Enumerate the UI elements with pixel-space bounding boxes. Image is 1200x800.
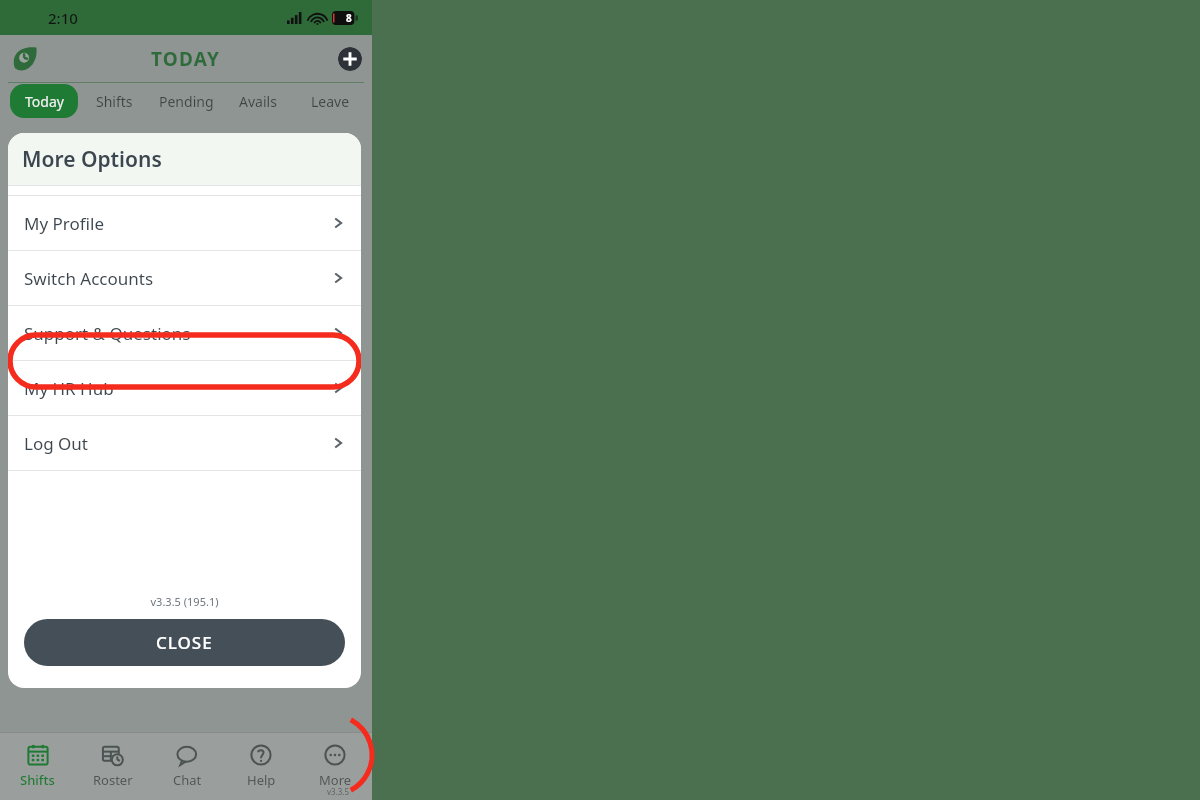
button[interactable]: More [298, 732, 372, 800]
button[interactable]: Chat [150, 732, 224, 800]
button[interactable]: Pending [150, 84, 222, 118]
staticText: My Profile [24, 212, 331, 235]
button[interactable]: Log Out [8, 416, 361, 470]
button[interactable]: Roster [75, 732, 150, 800]
staticText: Shifts [20, 771, 55, 789]
staticText: Support & Questions [24, 322, 331, 345]
staticText: Pending [159, 92, 214, 111]
staticText: TODAY [151, 46, 221, 72]
staticText: More Options [22, 145, 162, 174]
button[interactable]: My HR Hub [8, 361, 361, 415]
staticText: Today [25, 92, 64, 111]
staticText: Avails [239, 92, 277, 111]
button[interactable]: Leave [294, 84, 366, 118]
button[interactable]: Shifts [78, 84, 150, 118]
other: App logo [10, 44, 40, 74]
button[interactable]: Shifts [0, 732, 75, 800]
staticText: Roster [93, 771, 133, 789]
button[interactable]: Support & Questions [8, 306, 361, 360]
button[interactable]: CLOSE [24, 619, 345, 666]
button[interactable]: Avails [222, 84, 294, 118]
staticText: More [319, 771, 352, 789]
button[interactable]: Add [338, 47, 362, 71]
staticText: 2:10 [48, 8, 78, 28]
staticText: 8 [346, 11, 352, 25]
staticText: Leave [311, 92, 350, 111]
button[interactable]: Help [224, 732, 298, 800]
staticText: Shifts [96, 92, 133, 111]
staticText: Help [247, 771, 276, 789]
staticText: Switch Accounts [24, 267, 331, 290]
button[interactable]: Switch Accounts [8, 251, 361, 305]
staticText: v3.3.5 (195.1) [8, 594, 361, 609]
staticText: Log Out [24, 432, 331, 455]
staticText: CLOSE [156, 631, 213, 654]
button[interactable]: My Profile [8, 196, 361, 250]
staticText: Chat [173, 771, 202, 789]
button[interactable]: Today [10, 84, 78, 118]
staticText: My HR Hub [24, 377, 331, 400]
staticText: v3.3.5 [327, 786, 350, 797]
